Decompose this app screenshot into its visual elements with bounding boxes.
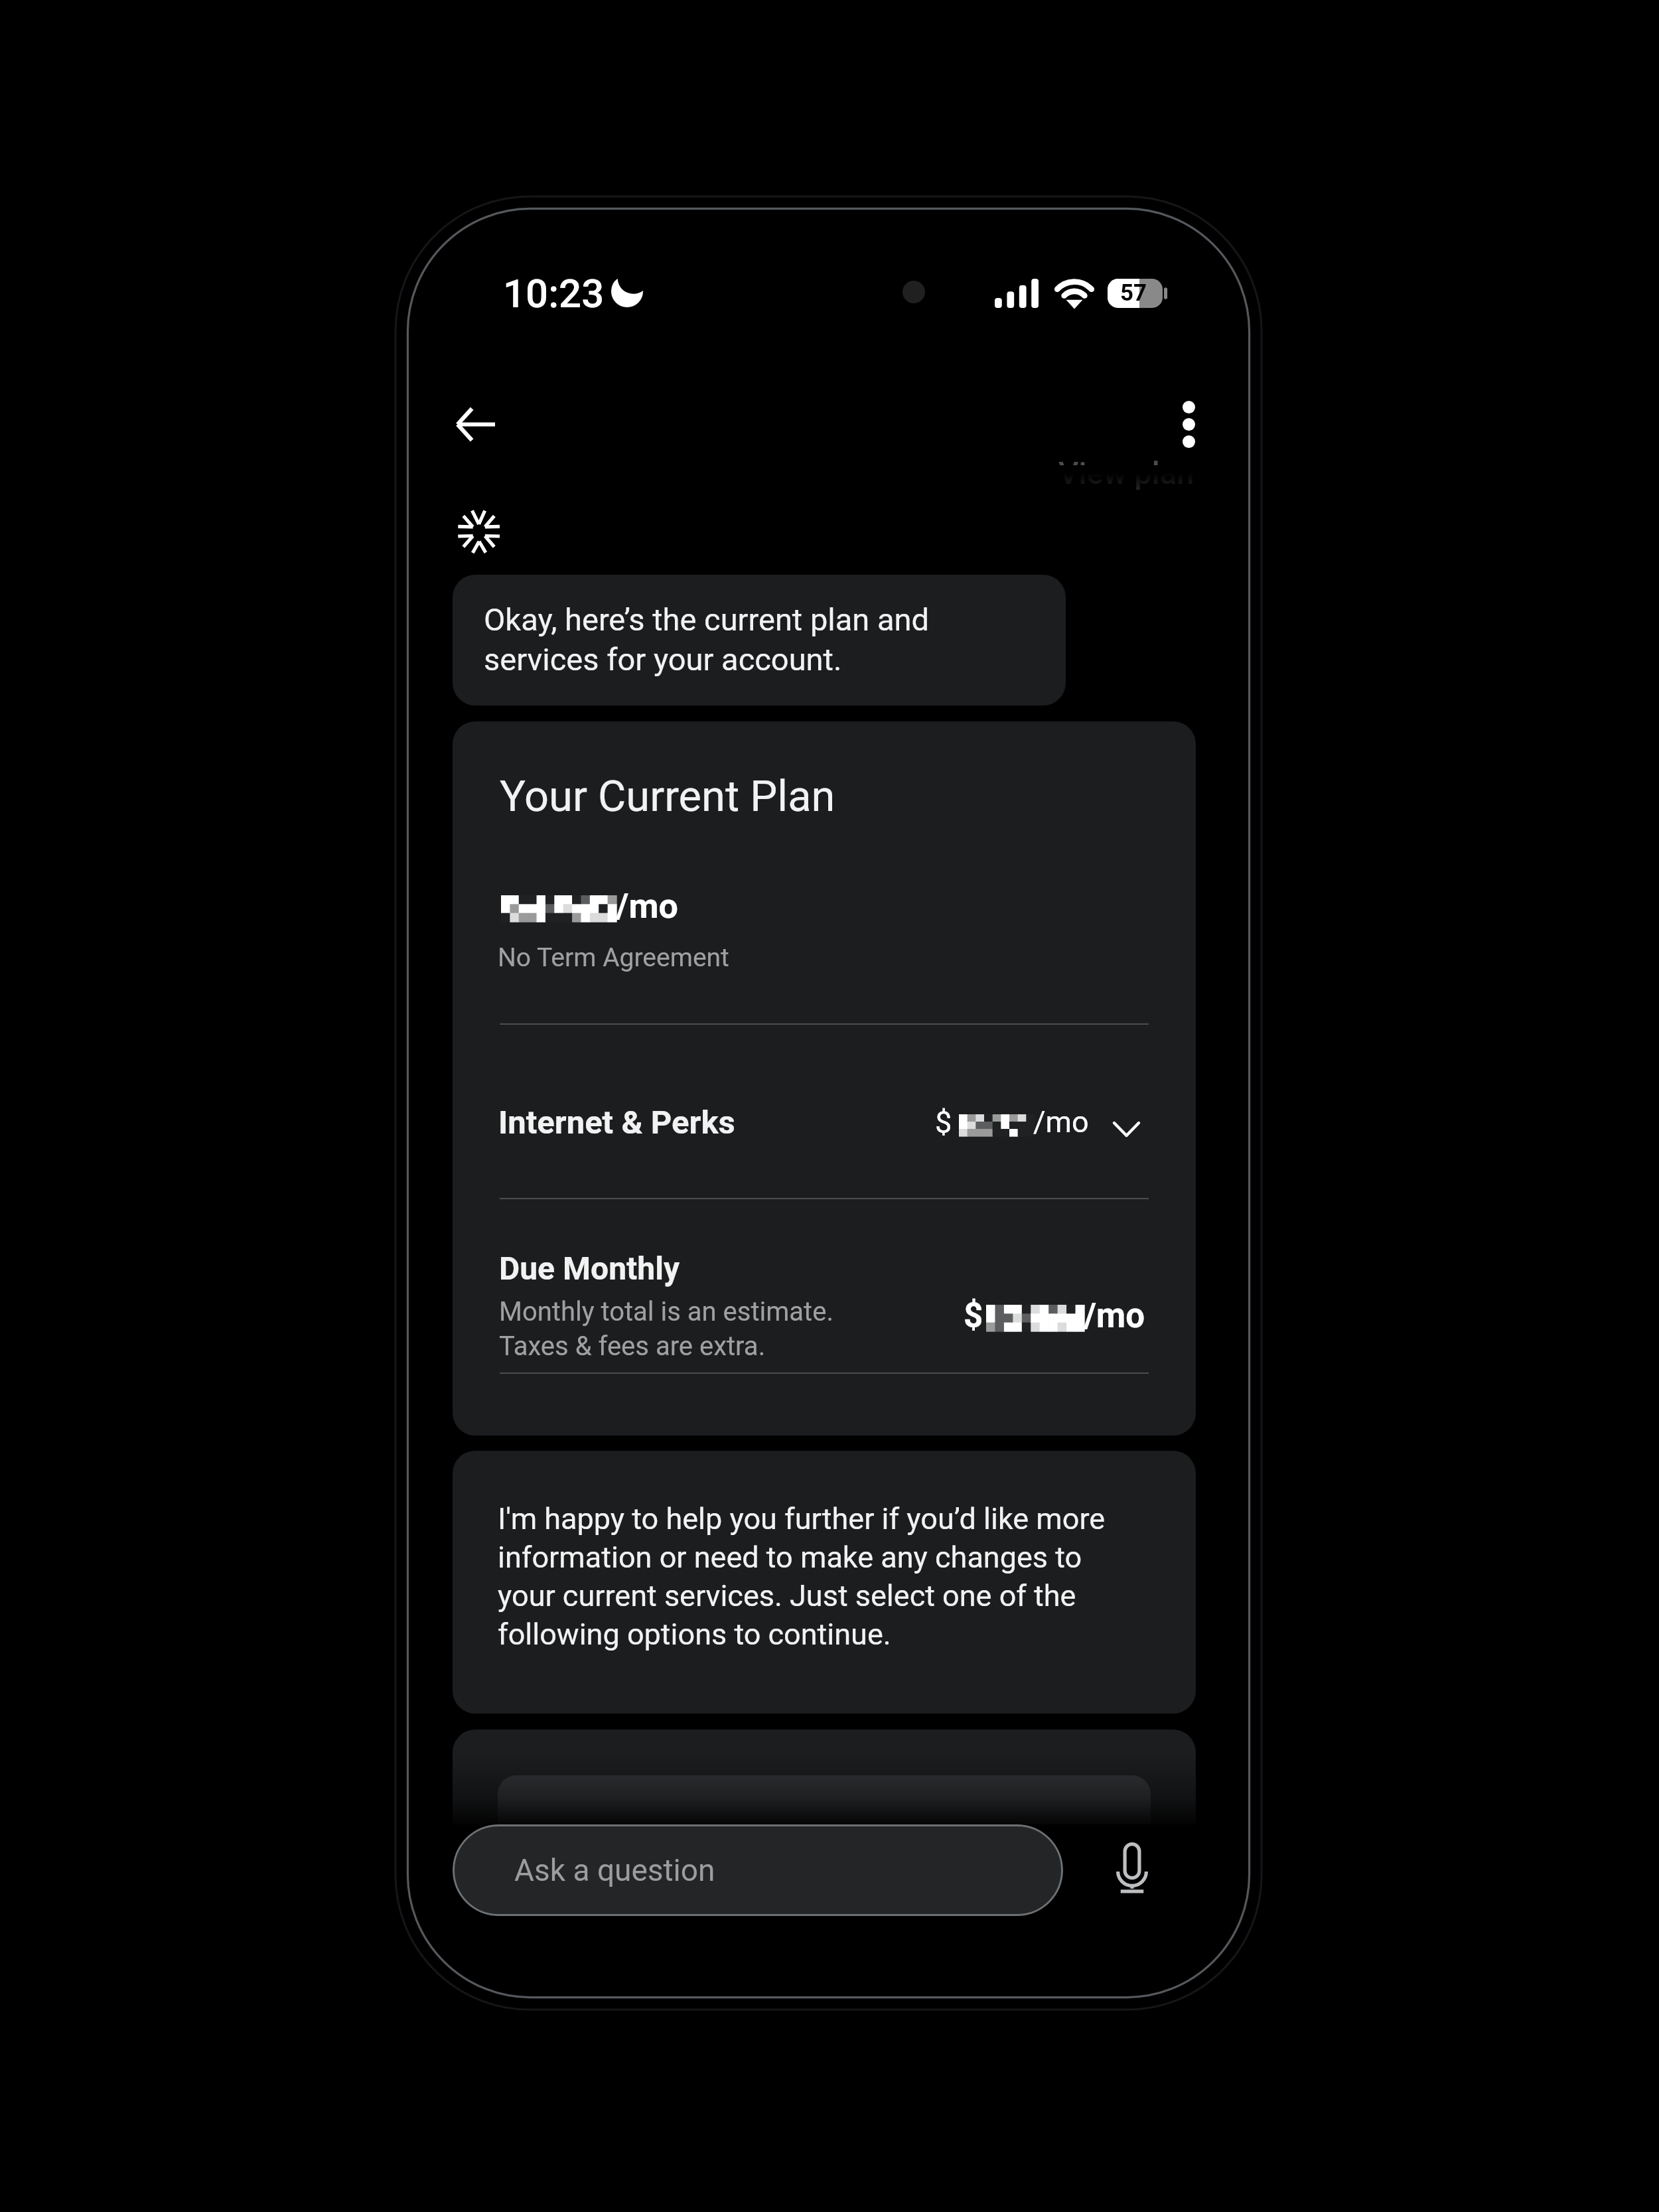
button[interactable]: View plan bbox=[1058, 465, 1199, 509]
staticText: $ bbox=[964, 1296, 983, 1336]
staticText: No Term Agreement bbox=[498, 942, 729, 973]
staticText: I'm happy to help you further if you’d l… bbox=[498, 1501, 1118, 1652]
staticText: Okay, here’s the current plan and servic… bbox=[484, 601, 948, 678]
button[interactable]: I'm happy to help you further if you’d l… bbox=[453, 1451, 1196, 1714]
button[interactable]: Voice input bbox=[1094, 1842, 1170, 1894]
staticText: Internet & Perks bbox=[498, 1104, 735, 1142]
staticText: Monthly total is an estimate. Taxes & fe… bbox=[499, 1296, 833, 1362]
staticText: 10:23 bbox=[503, 270, 605, 317]
button[interactable]: Ask a question bbox=[453, 1824, 1063, 1916]
button[interactable] bbox=[453, 1730, 1196, 1836]
staticText: Your Current Plan bbox=[500, 771, 835, 822]
staticText: /mo bbox=[616, 886, 678, 926]
staticText: /mo bbox=[1033, 1104, 1089, 1140]
button[interactable]: More options bbox=[1151, 387, 1226, 461]
staticText: Ask a question bbox=[514, 1852, 715, 1888]
staticText: View plan bbox=[1058, 455, 1194, 491]
staticText: 57 bbox=[1120, 279, 1147, 307]
staticText: /mo bbox=[1084, 1296, 1145, 1336]
button[interactable]: Okay, here’s the current plan and servic… bbox=[453, 575, 1066, 705]
button[interactable]: Expand Internet and Perks bbox=[1097, 1100, 1155, 1158]
staticText: $ bbox=[935, 1104, 952, 1140]
button[interactable]: Back bbox=[438, 387, 512, 461]
staticText: Due Monthly bbox=[499, 1250, 680, 1287]
